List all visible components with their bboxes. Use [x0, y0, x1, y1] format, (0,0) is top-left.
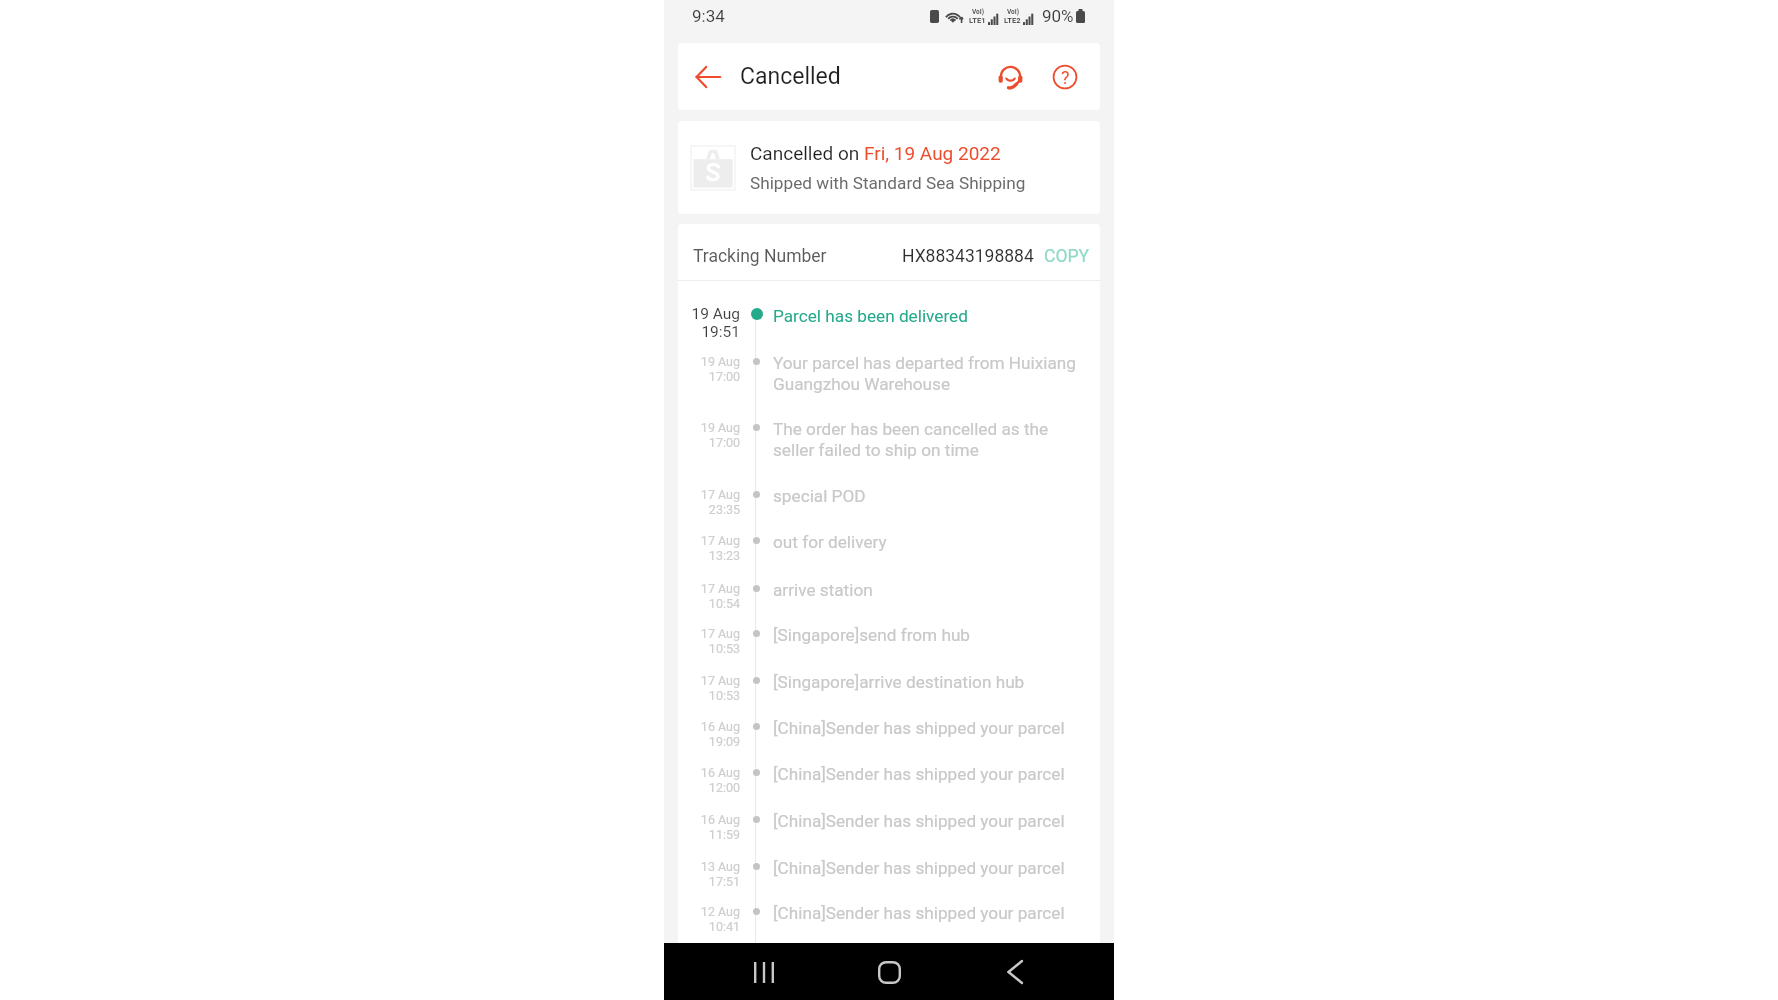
staticText: VoI) — [972, 8, 984, 16]
staticText: 19:51 — [701, 323, 740, 341]
button[interactable]: 17 Aug — [678, 522, 1100, 570]
staticText: 12:00 — [708, 780, 740, 795]
button[interactable]: Home — [868, 951, 910, 993]
staticText: [China]Sender has shipped your parcel — [773, 718, 1065, 738]
staticText: 9:34 — [692, 6, 725, 26]
staticText: [China]Sender has shipped your parcel — [773, 811, 1065, 831]
staticText: 19 Aug — [700, 354, 740, 369]
staticText: 17 Aug — [700, 533, 740, 548]
staticText: 90% — [1042, 6, 1074, 26]
button[interactable]: 19 Aug — [678, 343, 1100, 409]
staticText: 19:09 — [708, 734, 740, 749]
staticText: 10:41 — [708, 919, 740, 934]
staticText: 17:00 — [708, 435, 740, 450]
staticText: 17:00 — [708, 369, 740, 384]
button[interactable]: Recent apps — [743, 951, 785, 993]
staticText: 12 Aug — [700, 904, 740, 919]
staticText: 11:59 — [708, 827, 740, 842]
button[interactable]: Back — [690, 59, 726, 95]
staticText: special POD — [773, 486, 866, 506]
staticText: 19 Aug — [700, 420, 740, 435]
button[interactable]: 17 Aug — [678, 615, 1100, 662]
staticText: Your parcel has departed from Huixiang G… — [773, 353, 1086, 394]
staticText: Tracking Number — [693, 246, 827, 267]
staticText: COPY — [1044, 246, 1089, 267]
staticText: out for delivery — [773, 532, 887, 552]
button[interactable]: 17 Aug — [678, 662, 1100, 708]
staticText: 17 Aug — [700, 581, 740, 596]
staticText: [China]Sender has shipped your parcel — [773, 903, 1065, 923]
staticText: HX88343198884 — [902, 246, 1034, 267]
staticText: [Singapore]send from hub — [773, 625, 971, 645]
staticText: VoI) — [1007, 8, 1019, 16]
button[interactable]: 12 Aug — [678, 893, 1100, 953]
staticText: ? — [1061, 67, 1070, 88]
staticText: LTE2 — [1004, 16, 1021, 25]
button[interactable]: Help — [1047, 59, 1083, 95]
button[interactable]: 16 Aug — [678, 708, 1100, 754]
staticText: LTE1 — [969, 16, 986, 25]
staticText: 10:53 — [708, 688, 740, 703]
staticText: The order has been cancelled as the sell… — [773, 419, 1086, 460]
staticText: 17 Aug — [700, 626, 740, 641]
staticText: Cancelled — [740, 63, 841, 90]
button[interactable]: COPY — [1044, 246, 1089, 267]
staticText: 23:35 — [708, 502, 740, 517]
staticText: 17 Aug — [700, 673, 740, 688]
staticText: 16 Aug — [700, 765, 740, 780]
staticText: 19 Aug — [691, 305, 740, 323]
button[interactable]: 19 Aug — [678, 409, 1100, 476]
staticText: Parcel has been delivered — [773, 306, 968, 326]
staticText: arrive station — [773, 580, 873, 600]
staticText: [China]Sender has shipped your parcel — [773, 764, 1065, 784]
staticText: 16 Aug — [700, 719, 740, 734]
button[interactable]: 19 Aug — [678, 296, 1100, 343]
button[interactable]: Back — [994, 951, 1036, 993]
staticText: 17 Aug — [700, 487, 740, 502]
staticText: 13:23 — [708, 548, 740, 563]
button[interactable]: 16 Aug — [678, 801, 1100, 848]
staticText: [Singapore]arrive destination hub — [773, 672, 1025, 692]
button[interactable]: 17 Aug — [678, 570, 1100, 615]
button[interactable]: Customer support chat — [992, 59, 1028, 95]
button[interactable]: Cancelled on Fri, 19 Aug 2022 — [678, 121, 1100, 214]
staticText: [China]Sender has shipped your parcel — [773, 858, 1065, 878]
button[interactable]: Tracking Number — [693, 228, 1089, 284]
staticText: 13 Aug — [700, 859, 740, 874]
button[interactable]: 13 Aug — [678, 848, 1100, 893]
staticText: 16 Aug — [700, 812, 740, 827]
staticText: Shipped with Standard Sea Shipping — [750, 173, 1026, 193]
button[interactable]: 17 Aug — [678, 476, 1100, 522]
button[interactable]: 16 Aug — [678, 754, 1100, 801]
staticText: 10:53 — [708, 641, 740, 656]
staticText: Cancelled on Fri, 19 Aug 2022 — [750, 142, 1001, 164]
staticText: 10:54 — [708, 596, 740, 611]
staticText: 17:51 — [708, 874, 740, 889]
